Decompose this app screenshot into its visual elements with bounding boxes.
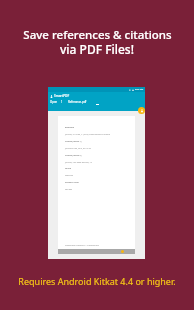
- staticText: Johnson, Lee. Deep learning, 19: [65, 161, 92, 163]
- staticText: Save references & citations: [23, 27, 172, 43]
- button[interactable]: Reference.pdf: [68, 100, 87, 104]
- staticText: Johnson, M. & Lee, A. (2019). Deep learn…: [65, 133, 110, 135]
- staticText: Created with SmartPDF — smartpdf.app: [65, 244, 99, 246]
- staticText: Reference: [65, 126, 75, 129]
- staticText: Requires Android Kitkat 4.4 or higher.: [18, 275, 176, 287]
- staticText: 1: [61, 100, 63, 104]
- button[interactable]: Save reference: [138, 107, 145, 114]
- staticText: Paper.pdf: [65, 174, 73, 176]
- staticText: 6:40 PM: [135, 88, 144, 91]
- staticText: Citation (option 2): [65, 154, 82, 157]
- staticText: Source: [65, 167, 72, 170]
- staticText: Key idea: [65, 188, 73, 190]
- staticText: via PDF Files!: [60, 41, 134, 57]
- staticText: SmartPDF: [54, 94, 70, 98]
- staticText: Personal Notes: [65, 181, 79, 184]
- staticText: Reference.pdf: [68, 100, 87, 104]
- staticText: Johnson & Lee, 2019, pp. 18-34: [65, 147, 91, 149]
- staticText: Open: [50, 100, 58, 104]
- button[interactable]: Open: [50, 100, 58, 104]
- staticText: Citation (option 1): [65, 140, 82, 143]
